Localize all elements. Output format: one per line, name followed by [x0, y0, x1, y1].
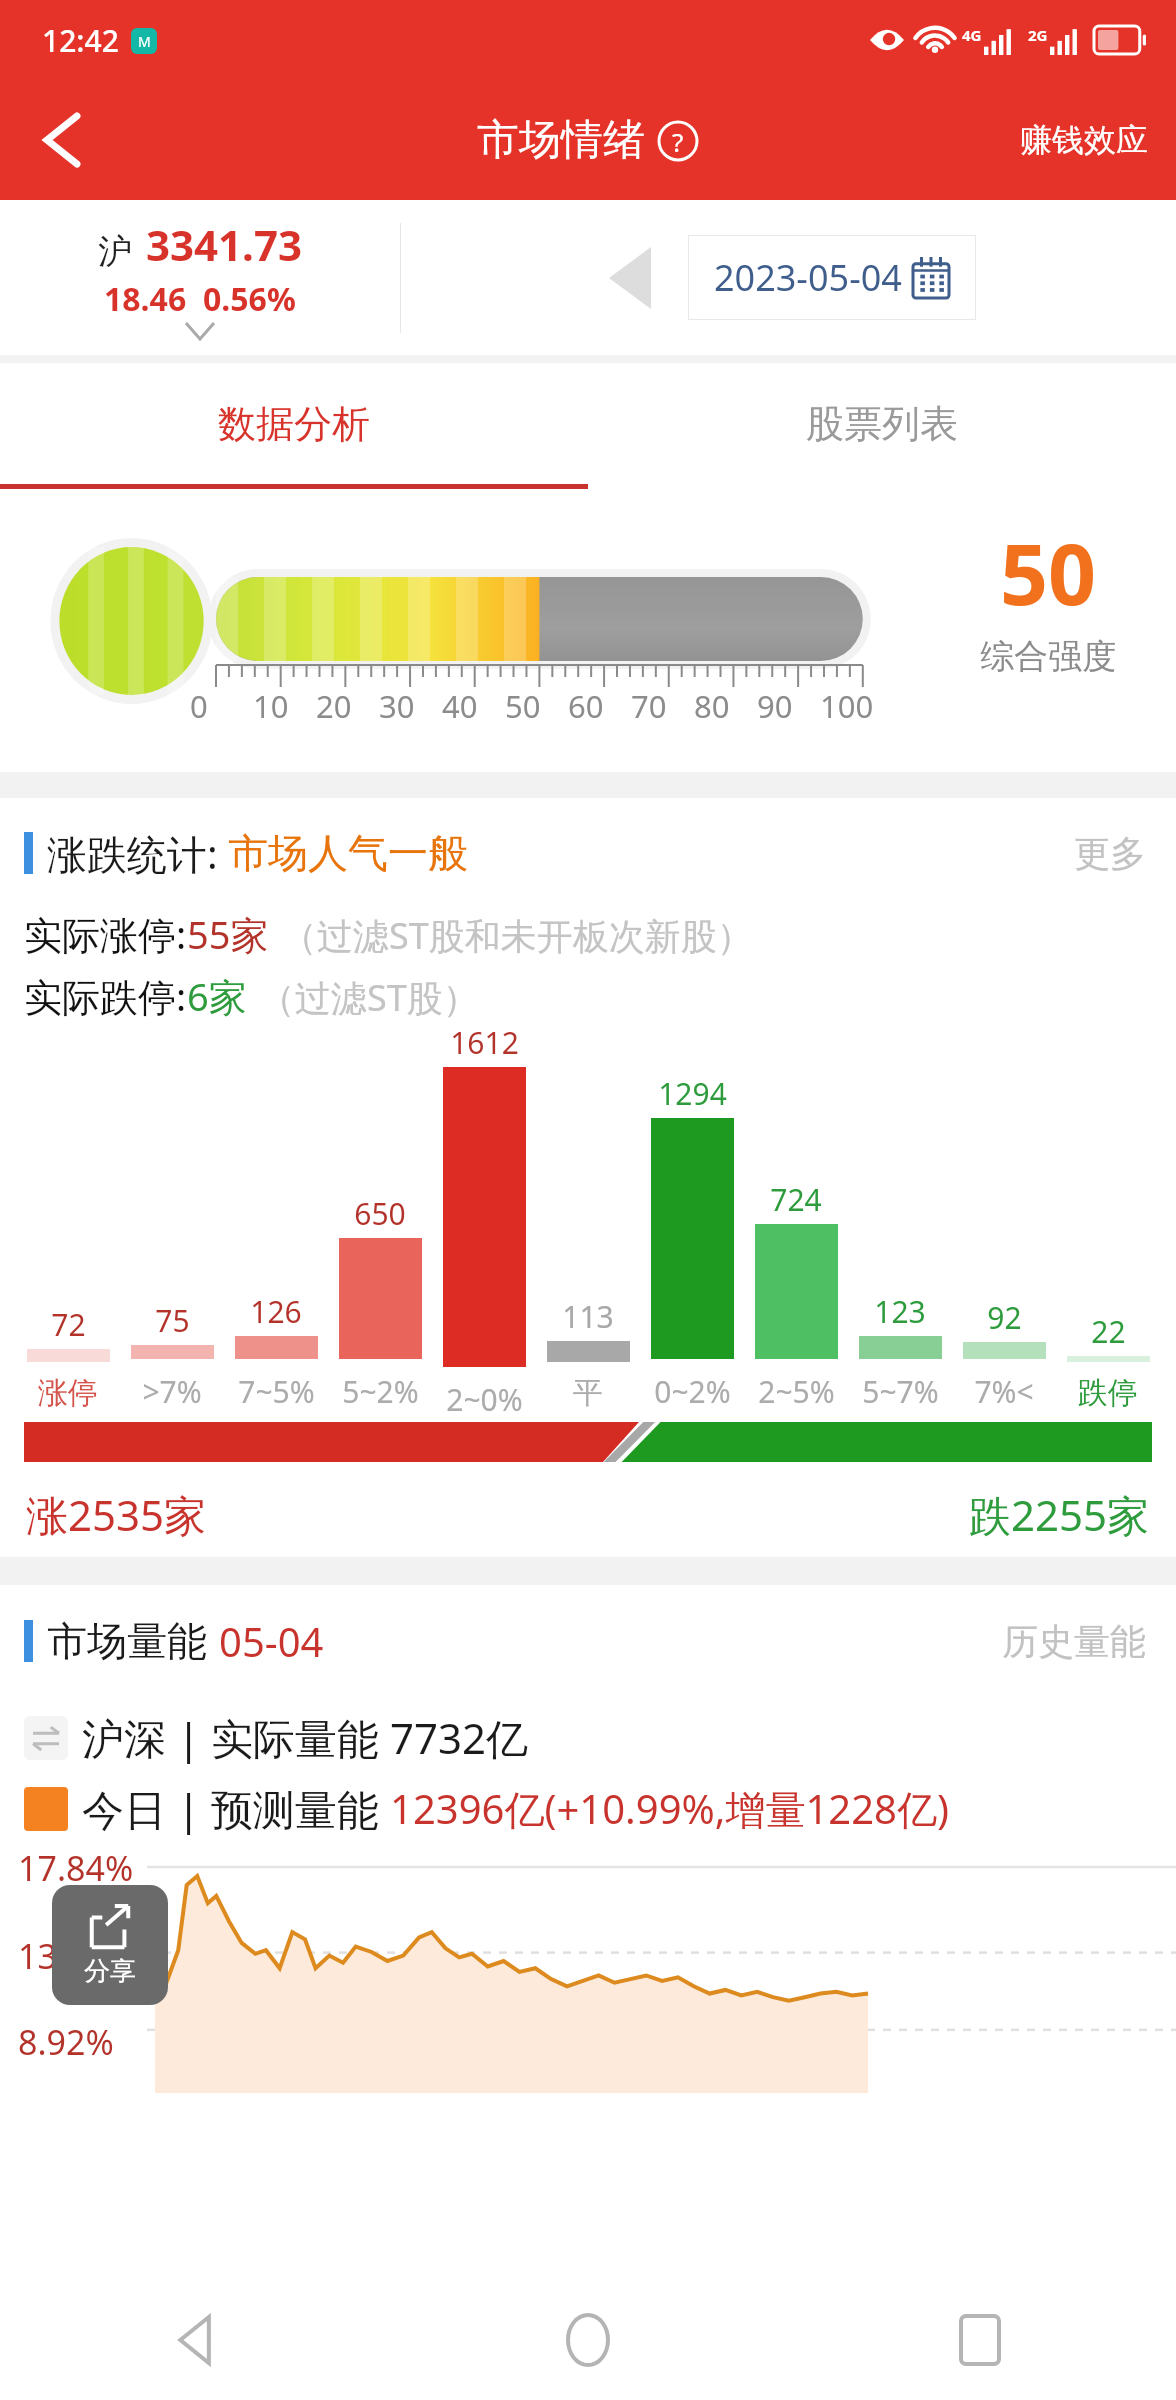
staticText: 55家	[187, 908, 269, 960]
staticText: 7%<	[974, 1371, 1034, 1412]
staticText: 市场量能	[47, 1616, 207, 1666]
staticText: 113	[562, 1296, 614, 1337]
staticText: 市场人气一般	[228, 828, 468, 878]
button[interactable]: 市场量能	[0, 1585, 1176, 1697]
other: Help	[657, 120, 699, 162]
staticText: 92	[987, 1297, 1022, 1338]
staticText: 650	[354, 1193, 406, 1234]
staticText: 05-04	[219, 1614, 324, 1668]
staticText: 50	[505, 685, 541, 727]
staticText: 100	[820, 685, 874, 727]
staticText: 市场情绪	[477, 114, 645, 167]
staticText: 涨跌统计:	[47, 826, 218, 881]
staticText: 分享	[84, 1955, 136, 1988]
staticText: 60	[568, 685, 604, 727]
staticText: 赚钱效应	[1020, 120, 1148, 160]
staticText: 0	[190, 685, 208, 727]
staticText: 20	[316, 685, 352, 727]
staticText: （过滤ST股）	[259, 973, 479, 1022]
staticText: 90	[757, 685, 793, 727]
staticText: 历史量能	[1002, 1619, 1146, 1664]
staticText: 1294	[658, 1073, 727, 1114]
button[interactable]: 2023-05-04	[688, 235, 976, 320]
staticText: 18.46	[104, 277, 187, 321]
button[interactable]: 股票列表	[588, 363, 1176, 484]
staticText: 6家	[187, 970, 247, 1022]
staticText: 12:42	[42, 20, 119, 61]
button[interactable]: 赚钱效应	[1020, 120, 1148, 160]
staticText: 13.38%	[18, 1933, 134, 1979]
staticText: 实际涨停:	[24, 908, 187, 960]
button[interactable]: Previous day	[602, 238, 658, 318]
staticText: 2~0%	[446, 1379, 523, 1412]
staticText: 2023-05-04	[714, 253, 902, 302]
staticText: 22	[1091, 1311, 1126, 1352]
staticText: 8.92%	[18, 2019, 114, 2065]
staticText: 30	[379, 685, 415, 727]
staticText: 数据分析	[218, 400, 370, 448]
staticText: 75	[155, 1300, 190, 1341]
staticText: 沪	[98, 230, 132, 273]
staticText: >7%	[142, 1371, 202, 1412]
staticText: ?	[672, 124, 684, 159]
staticText: M	[138, 32, 151, 51]
staticText: 跌停	[1078, 1374, 1138, 1412]
staticText: 7~5%	[238, 1371, 315, 1412]
staticText: 实际跌停:	[24, 970, 187, 1022]
staticText: 股票列表	[806, 400, 958, 448]
staticText: 123	[874, 1291, 926, 1332]
button[interactable]: Share	[52, 1885, 168, 2005]
staticText: 17.84%	[18, 1845, 134, 1891]
staticText: 涨2535家	[26, 1486, 207, 1543]
staticText: 70	[631, 685, 667, 727]
staticText: 0~2%	[654, 1371, 731, 1412]
button[interactable]: Back	[0, 2280, 392, 2400]
button[interactable]: Recents	[784, 2280, 1176, 2400]
staticText: 跌2255家	[969, 1486, 1150, 1543]
button[interactable]: Home	[392, 2280, 784, 2400]
staticText: 2G	[1028, 25, 1048, 45]
staticText: 平	[573, 1374, 603, 1412]
staticText: 12396亿(+10.99%,增量1228亿)	[390, 1781, 949, 1836]
staticText: 724	[770, 1179, 822, 1220]
staticText: 4G	[962, 25, 982, 45]
staticText: 涨停	[38, 1374, 98, 1412]
staticText: 50	[1000, 515, 1097, 629]
staticText: 10	[253, 685, 289, 727]
staticText: 沪深 | 实际量能 7732亿	[82, 1709, 528, 1766]
staticText: 更多	[1074, 831, 1146, 876]
staticText: 5~2%	[342, 1371, 419, 1412]
staticText: 今日 | 预测量能	[82, 1780, 390, 1837]
staticText: 1612	[450, 1022, 519, 1063]
staticText: 72	[51, 1304, 86, 1345]
button[interactable]: 涨跌统计:	[0, 798, 1176, 908]
staticText: 综合强度	[980, 635, 1116, 678]
staticText: 5~7%	[862, 1371, 939, 1412]
staticText: 3341.73	[146, 216, 302, 273]
staticText: 80	[694, 685, 730, 727]
staticText: 40	[442, 685, 478, 727]
button[interactable]: 市场情绪	[477, 114, 699, 167]
button[interactable]: 沪	[0, 216, 400, 339]
staticText: 2~5%	[758, 1371, 835, 1412]
staticText: （过滤ST股和未开板次新股）	[281, 911, 753, 960]
button[interactable]: 数据分析	[0, 363, 588, 484]
staticText: 126	[250, 1291, 302, 1332]
button[interactable]: Back	[22, 100, 102, 180]
staticText: 0.56%	[203, 277, 296, 321]
